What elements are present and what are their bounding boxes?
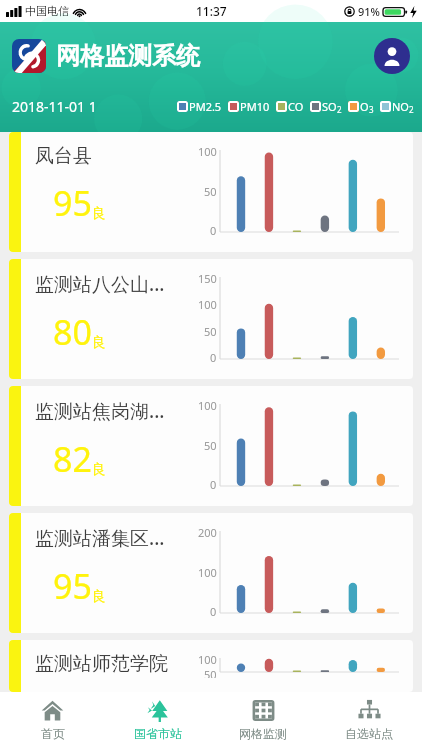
staticText: 监测站潘集区... — [35, 525, 165, 551]
staticText: 2 — [337, 104, 342, 115]
staticText: SO — [322, 99, 337, 114]
button[interactable]: SO — [310, 99, 342, 114]
staticText: 良 — [92, 461, 106, 479]
staticText: 100 — [198, 652, 217, 667]
staticText: 国省市站 — [134, 726, 182, 741]
staticText: 11:37 — [196, 3, 227, 19]
staticText: 2 — [409, 104, 414, 115]
staticText: 3 — [369, 104, 374, 115]
staticText: 监测站八公山... — [35, 271, 165, 297]
staticText: CO — [288, 99, 304, 114]
staticText: 自选站点 — [345, 726, 393, 741]
staticText: O — [360, 99, 369, 114]
button[interactable]: PM2.5 — [177, 99, 222, 114]
staticText: 0 — [210, 604, 217, 619]
button[interactable]: 自选站点 — [316, 692, 422, 750]
staticText: 0 — [210, 223, 217, 238]
button[interactable]: 凤台县 — [9, 132, 413, 252]
staticText: 100 — [198, 297, 217, 312]
staticText: 95 — [53, 180, 92, 226]
button[interactable]: PM10 — [228, 99, 270, 114]
staticText: PM2.5 — [189, 99, 222, 114]
button[interactable]: Account — [374, 38, 410, 74]
button[interactable]: 监测站师范学院 — [9, 640, 413, 692]
staticText: 良 — [92, 205, 106, 223]
staticText: 中国电信 — [25, 4, 69, 18]
button[interactable]: 监测站焦岗湖... — [9, 386, 413, 506]
staticText: 91% — [358, 4, 380, 19]
button[interactable]: NO — [380, 99, 414, 114]
staticText: 凤台县 — [35, 144, 92, 168]
staticText: 200 — [198, 525, 217, 540]
staticText: 100 — [198, 144, 217, 159]
staticText: 监测站焦岗湖... — [35, 398, 165, 424]
button[interactable]: 监测站八公山... — [9, 259, 413, 379]
staticText: 50 — [204, 667, 217, 678]
staticText: 50 — [204, 184, 217, 199]
staticText: 网格监测系统 — [56, 41, 200, 71]
button[interactable]: 国省市站 — [105, 692, 210, 750]
staticText: 良 — [92, 588, 106, 606]
staticText: 150 — [198, 271, 217, 286]
staticText: 首页 — [41, 726, 65, 741]
staticText: 0 — [210, 477, 217, 492]
staticText: 良 — [92, 334, 106, 352]
button[interactable]: 监测站潘集区... — [9, 513, 413, 633]
staticText: 网格监测 — [239, 726, 287, 741]
staticText: 100 — [198, 565, 217, 580]
staticText: 0 — [210, 350, 217, 365]
staticText: 80 — [53, 309, 92, 355]
staticText: 82 — [53, 436, 92, 482]
staticText: 50 — [204, 438, 217, 453]
button[interactable]: O — [348, 99, 374, 114]
button[interactable]: 2018-11-01 1 — [12, 97, 97, 116]
staticText: 50 — [204, 324, 217, 339]
button[interactable]: 网格监测 — [210, 692, 316, 750]
button[interactable]: CO — [276, 99, 304, 114]
staticText: 100 — [198, 398, 217, 413]
staticText: 监测站师范学院 — [35, 652, 168, 676]
button[interactable]: Logo — [12, 39, 46, 73]
button[interactable]: 首页 — [0, 692, 105, 750]
staticText: 95 — [53, 563, 92, 609]
staticText: NO — [392, 99, 409, 114]
staticText: PM10 — [240, 99, 270, 114]
